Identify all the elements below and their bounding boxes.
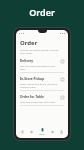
button[interactable]: Delivery (16, 57, 68, 75)
button[interactable]: Account (59, 129, 64, 135)
staticText: Get your food delivered to your door (20, 64, 59, 70)
button[interactable]: Order for Table (16, 93, 68, 108)
button[interactable]: In-Store Pickup (16, 75, 68, 93)
staticText: Order for Table (20, 95, 44, 99)
staticText: Order ahead and pick it up at the counte… (20, 82, 59, 88)
other: Open Delivery (61, 60, 64, 63)
staticText: Order (39, 133, 45, 136)
staticText: Order (29, 6, 55, 18)
button[interactable]: Menu (29, 129, 34, 135)
button[interactable]: Order (38, 127, 46, 137)
other: Open Order for Table (61, 96, 64, 99)
staticText: Choose an option below to place your ord… (20, 48, 64, 54)
staticText: In-Store Pickup (20, 77, 45, 81)
staticText: Scan and order from your table (20, 100, 56, 103)
button[interactable]: Home (20, 129, 25, 135)
button[interactable]: Rewards (50, 129, 55, 135)
staticText: Delivery (20, 59, 34, 63)
staticText: Order (20, 39, 38, 47)
other: Open In-Store Pickup (61, 78, 64, 81)
